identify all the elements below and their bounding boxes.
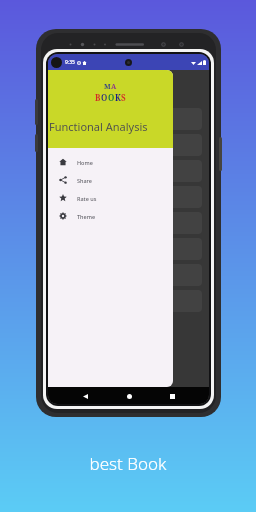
staticText: Home (77, 159, 93, 166)
staticText: O (108, 92, 115, 103)
staticText: Share (77, 177, 92, 184)
other: Theme (59, 212, 67, 220)
other: Home (59, 158, 67, 166)
button[interactable] (55, 108, 202, 130)
button[interactable] (55, 290, 202, 312)
staticText: B (95, 92, 101, 103)
button[interactable] (55, 186, 202, 208)
staticText: Functional Analysis (49, 119, 148, 134)
button[interactable]: Back (78, 389, 92, 403)
button[interactable] (55, 212, 202, 234)
other: Share (59, 176, 67, 184)
button[interactable]: Recents (165, 389, 179, 403)
button[interactable]: Home (48, 153, 173, 171)
button[interactable]: Rate us (48, 189, 173, 207)
staticText: K (115, 92, 121, 103)
button[interactable] (55, 264, 202, 286)
button[interactable]: Home (122, 389, 136, 403)
button[interactable] (55, 238, 202, 260)
staticText: Rate us (77, 195, 97, 202)
button[interactable] (55, 160, 202, 182)
button[interactable]: Share (48, 171, 173, 189)
staticText: Theme (77, 213, 96, 220)
other: Rate us (59, 194, 67, 202)
staticText: S (121, 92, 126, 103)
button[interactable]: Theme (48, 207, 173, 225)
staticText: O (101, 92, 108, 103)
staticText: 9:35 (65, 59, 75, 66)
staticText: best Book (0, 452, 256, 475)
staticText: M (104, 82, 111, 92)
button[interactable] (55, 134, 202, 156)
staticText: A (111, 82, 117, 92)
